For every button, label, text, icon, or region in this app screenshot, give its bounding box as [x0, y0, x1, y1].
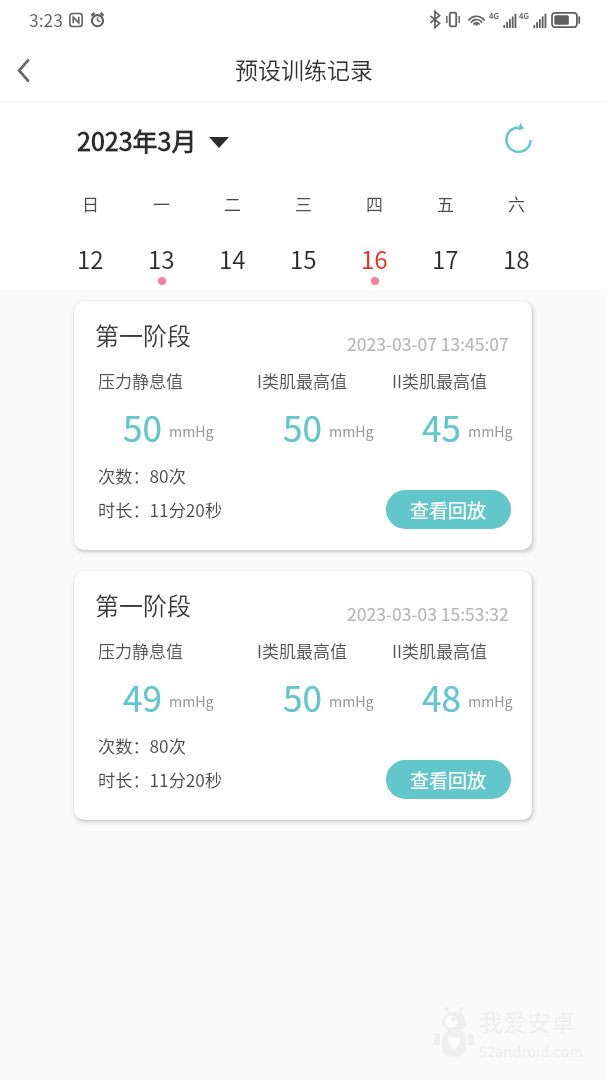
staticText: I类肌最高值: [257, 638, 347, 663]
staticText: 时长：11分20秒: [98, 497, 223, 522]
staticText: 我爱安卓: [479, 1004, 575, 1037]
staticText: 50: [123, 401, 162, 452]
staticText: 四: [366, 191, 383, 216]
staticText: 4G: [519, 10, 529, 22]
button[interactable]: 15: [268, 241, 339, 285]
staticText: mmHg: [329, 691, 374, 712]
staticText: II类肌最高值: [392, 638, 487, 663]
staticText: 日: [82, 191, 99, 216]
staticText: 预设训练记录: [235, 52, 373, 85]
staticText: 压力静息值: [98, 638, 183, 663]
staticText: 45: [422, 401, 461, 452]
staticText: 第一阶段: [95, 587, 191, 622]
staticText: mmHg: [169, 691, 214, 712]
staticText: 18: [503, 241, 530, 276]
staticText: 次数：80次: [98, 733, 186, 758]
button[interactable]: 17: [410, 241, 481, 285]
button[interactable]: 16: [339, 241, 410, 285]
staticText: 次数：80次: [98, 463, 186, 488]
staticText: 17: [432, 241, 459, 276]
staticText: 16: [361, 241, 388, 276]
button[interactable]: 2023年3月: [77, 122, 229, 158]
staticText: 二: [224, 191, 241, 216]
button[interactable]: 查看回放: [386, 760, 511, 799]
staticText: 时长：11分20秒: [98, 767, 223, 792]
button[interactable]: Back: [0, 42, 46, 98]
button[interactable]: 18: [481, 241, 552, 285]
staticText: 2023-03-07 13:45:07: [347, 331, 509, 356]
staticText: 2023年3月: [77, 122, 197, 158]
button[interactable]: 第一阶段: [74, 571, 532, 820]
staticText: 一: [153, 191, 170, 216]
staticText: 2023-03-03 15:53:32: [347, 601, 509, 626]
staticText: 三: [295, 191, 312, 216]
staticText: 52android.com: [479, 1041, 584, 1061]
staticText: mmHg: [169, 421, 214, 442]
button[interactable]: Refresh: [503, 123, 537, 157]
staticText: 12: [77, 241, 104, 276]
staticText: 3:23: [29, 7, 64, 32]
staticText: mmHg: [468, 691, 513, 712]
staticText: mmHg: [468, 421, 513, 442]
button[interactable]: 13: [126, 241, 197, 285]
staticText: 查看回放: [410, 496, 487, 524]
staticText: II类肌最高值: [392, 368, 487, 393]
staticText: I类肌最高值: [257, 368, 347, 393]
staticText: 4G: [489, 10, 499, 22]
staticText: 六: [508, 191, 525, 216]
button[interactable]: 第一阶段: [74, 301, 532, 550]
staticText: 13: [148, 241, 175, 276]
staticText: 49: [123, 671, 162, 722]
button[interactable]: 12: [55, 241, 126, 285]
staticText: 15: [290, 241, 317, 276]
staticText: 14: [219, 241, 246, 276]
button[interactable]: 查看回放: [386, 490, 511, 529]
staticText: 50: [283, 401, 322, 452]
staticText: 查看回放: [410, 766, 487, 794]
staticText: 五: [437, 191, 454, 216]
button[interactable]: 14: [197, 241, 268, 285]
staticText: 压力静息值: [98, 368, 183, 393]
staticText: 48: [422, 671, 461, 722]
staticText: 第一阶段: [95, 317, 191, 352]
staticText: 50: [283, 671, 322, 722]
staticText: mmHg: [329, 421, 374, 442]
